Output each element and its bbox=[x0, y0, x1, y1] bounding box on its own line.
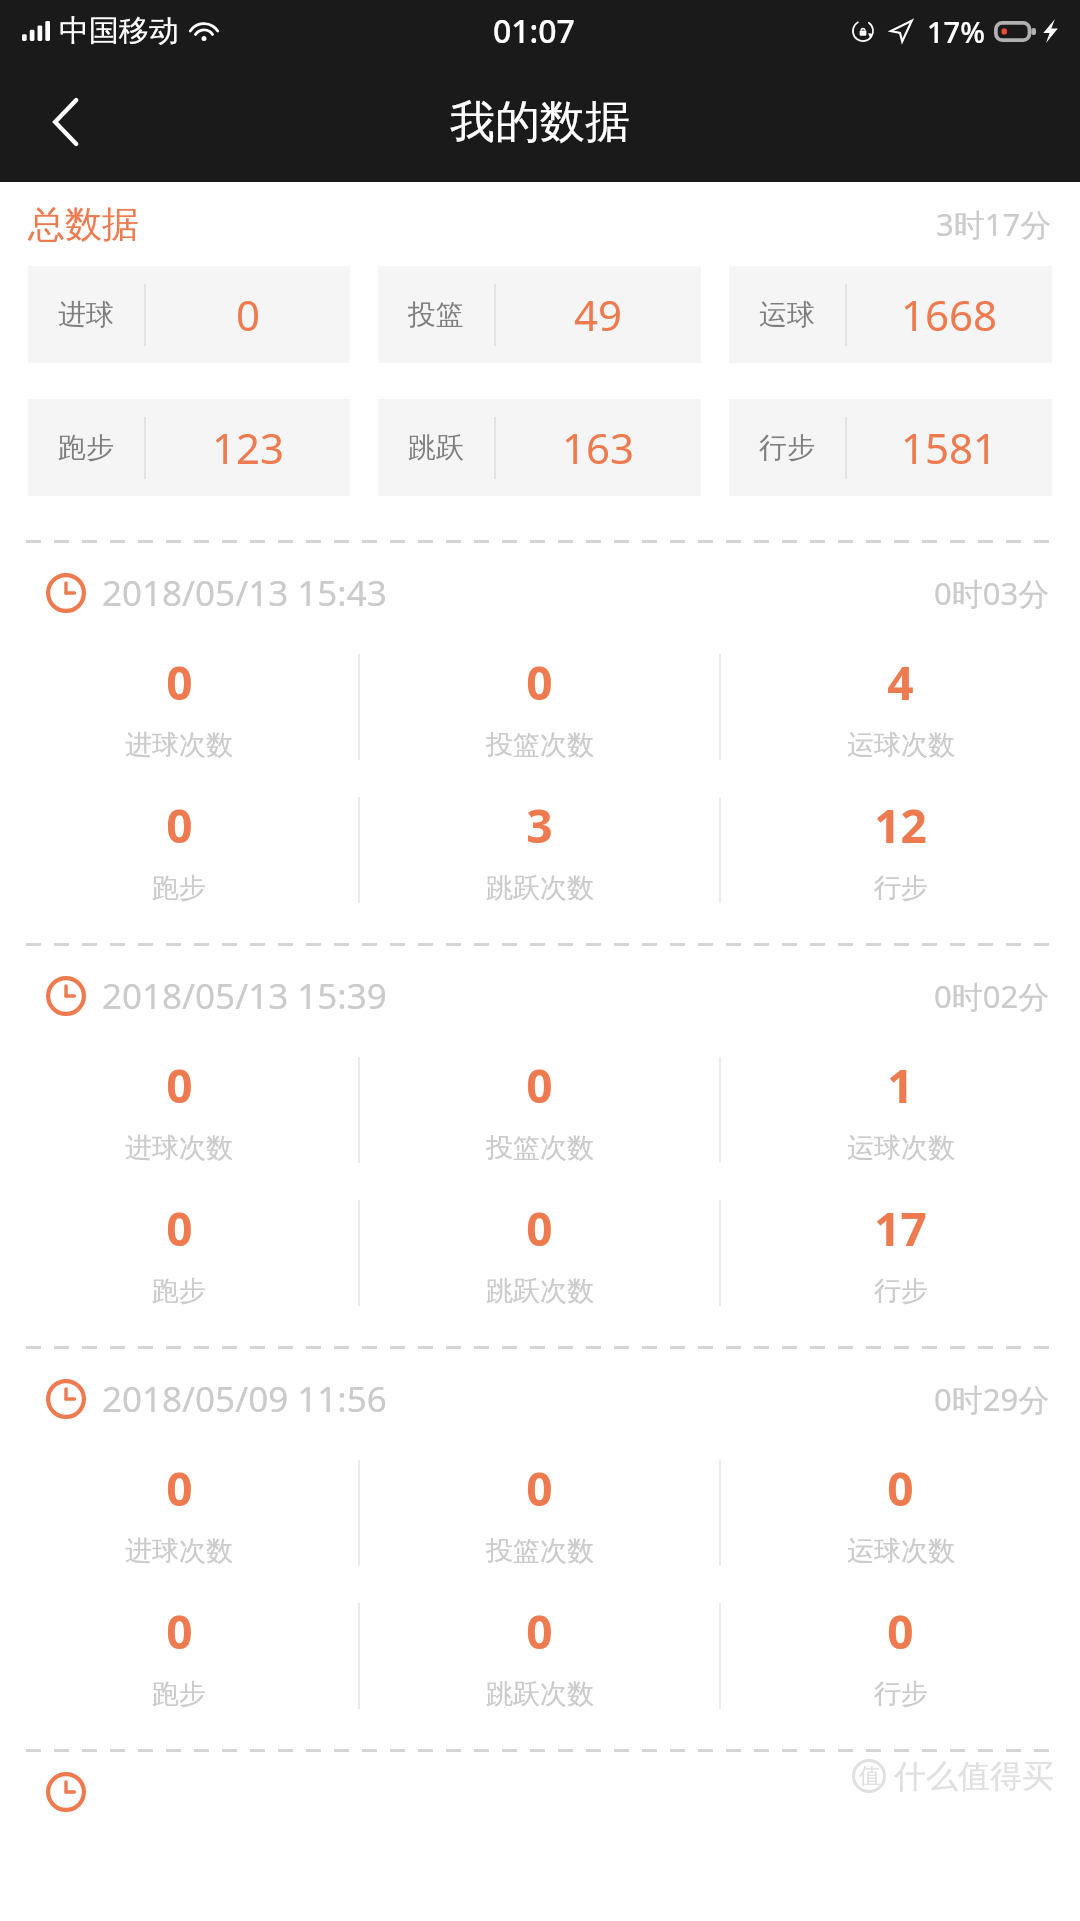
staticText: 0 bbox=[166, 1054, 193, 1117]
button[interactable]: Back bbox=[26, 82, 106, 162]
button[interactable]: 12 bbox=[721, 778, 1080, 921]
staticText: 中国移动 bbox=[59, 12, 179, 50]
staticText: 2018/05/13 15:39 bbox=[102, 972, 387, 1020]
button[interactable]: 0 bbox=[0, 1038, 358, 1181]
staticText: 0 bbox=[526, 1197, 553, 1260]
staticText: 行步 bbox=[874, 871, 928, 905]
staticText: 49 bbox=[574, 286, 623, 343]
staticText: 总数据 bbox=[28, 201, 139, 248]
button[interactable]: 0 bbox=[0, 635, 358, 778]
staticText: 0 bbox=[166, 1457, 193, 1520]
staticText: 0时03分 bbox=[934, 572, 1050, 614]
staticText: 17% bbox=[927, 12, 985, 51]
button[interactable]: 2018/05/09 11:56 bbox=[46, 1369, 1050, 1429]
button[interactable]: 0 bbox=[0, 778, 358, 921]
button[interactable]: 行步 bbox=[729, 399, 1052, 496]
staticText: 0 bbox=[166, 651, 193, 714]
staticText: 1581 bbox=[901, 419, 998, 476]
staticText: 行步 bbox=[759, 430, 815, 465]
staticText: 4 bbox=[887, 651, 914, 714]
staticText: 2018/05/13 15:43 bbox=[102, 569, 387, 617]
staticText: 运球次数 bbox=[847, 1131, 955, 1165]
staticText: 跳跃次数 bbox=[486, 1677, 594, 1711]
staticText: 0时02分 bbox=[934, 975, 1050, 1017]
button[interactable]: 跳跃 bbox=[378, 399, 701, 496]
staticText: 行步 bbox=[874, 1677, 928, 1711]
staticText: 跑步 bbox=[152, 1274, 206, 1308]
button[interactable]: 0 bbox=[721, 1584, 1080, 1727]
staticText: 01:07 bbox=[493, 9, 575, 53]
staticText: 运球次数 bbox=[847, 1534, 955, 1568]
staticText: 3 bbox=[526, 794, 553, 857]
staticText: 3时17分 bbox=[936, 203, 1052, 245]
staticText: 0时29分 bbox=[934, 1378, 1050, 1420]
staticText: 0 bbox=[526, 1054, 553, 1117]
staticText: 投篮 bbox=[408, 297, 464, 332]
staticText: 什么值得买 bbox=[894, 1756, 1054, 1796]
staticText: 17 bbox=[874, 1197, 927, 1260]
button[interactable]: 跑步 bbox=[28, 399, 350, 496]
staticText: 2018/05/09 11:56 bbox=[102, 1375, 387, 1423]
button[interactable]: 0 bbox=[721, 1441, 1080, 1584]
staticText: 跑步 bbox=[152, 1677, 206, 1711]
button[interactable]: 0 bbox=[0, 1441, 358, 1584]
staticText: 0 bbox=[887, 1600, 914, 1663]
staticText: 进球次数 bbox=[125, 1131, 233, 1165]
staticText: 12 bbox=[874, 794, 927, 857]
staticText: 123 bbox=[212, 419, 285, 476]
button[interactable]: 投篮 bbox=[378, 266, 701, 363]
staticText: 运球 bbox=[759, 297, 815, 332]
staticText: 1 bbox=[887, 1054, 914, 1117]
staticText: 进球次数 bbox=[125, 728, 233, 762]
staticText: 投篮次数 bbox=[486, 1131, 594, 1165]
button[interactable]: 0 bbox=[360, 1038, 719, 1181]
staticText: 0 bbox=[166, 1197, 193, 1260]
button[interactable]: 0 bbox=[360, 1181, 719, 1324]
staticText: 值 bbox=[859, 1763, 880, 1789]
staticText: 1668 bbox=[901, 286, 998, 343]
button[interactable]: 3 bbox=[360, 778, 719, 921]
button[interactable]: 17 bbox=[721, 1181, 1080, 1324]
staticText: 跳跃 bbox=[408, 430, 464, 465]
staticText: 进球次数 bbox=[125, 1534, 233, 1568]
staticText: 163 bbox=[562, 419, 635, 476]
staticText: 投篮次数 bbox=[486, 728, 594, 762]
staticText: 0 bbox=[526, 1457, 553, 1520]
staticText: 0 bbox=[166, 1600, 193, 1663]
staticText: 跳跃次数 bbox=[486, 871, 594, 905]
staticText: 投篮次数 bbox=[486, 1534, 594, 1568]
staticText: 进球 bbox=[58, 297, 114, 332]
button[interactable]: 0 bbox=[0, 1181, 358, 1324]
button[interactable]: 0 bbox=[360, 635, 719, 778]
button[interactable]: 运球 bbox=[729, 266, 1052, 363]
button[interactable]: 进球 bbox=[28, 266, 350, 363]
staticText: 0 bbox=[526, 1600, 553, 1663]
button[interactable]: 2018/05/13 15:43 bbox=[46, 563, 1050, 623]
staticText: 行步 bbox=[874, 1274, 928, 1308]
button[interactable]: 0 bbox=[0, 1584, 358, 1727]
button[interactable]: 0 bbox=[360, 1441, 719, 1584]
staticText: 跑步 bbox=[152, 871, 206, 905]
button[interactable]: 1 bbox=[721, 1038, 1080, 1181]
staticText: 0 bbox=[166, 794, 193, 857]
staticText: 跳跃次数 bbox=[486, 1274, 594, 1308]
button[interactable]: 4 bbox=[721, 635, 1080, 778]
staticText: 运球次数 bbox=[847, 728, 955, 762]
button[interactable]: 2018/05/13 15:39 bbox=[46, 966, 1050, 1026]
staticText: 0 bbox=[887, 1457, 914, 1520]
staticText: 跑步 bbox=[58, 430, 114, 465]
button[interactable]: 0 bbox=[360, 1584, 719, 1727]
staticText: 我的数据 bbox=[450, 94, 630, 151]
staticText: 0 bbox=[526, 651, 553, 714]
staticText: 0 bbox=[236, 286, 261, 343]
